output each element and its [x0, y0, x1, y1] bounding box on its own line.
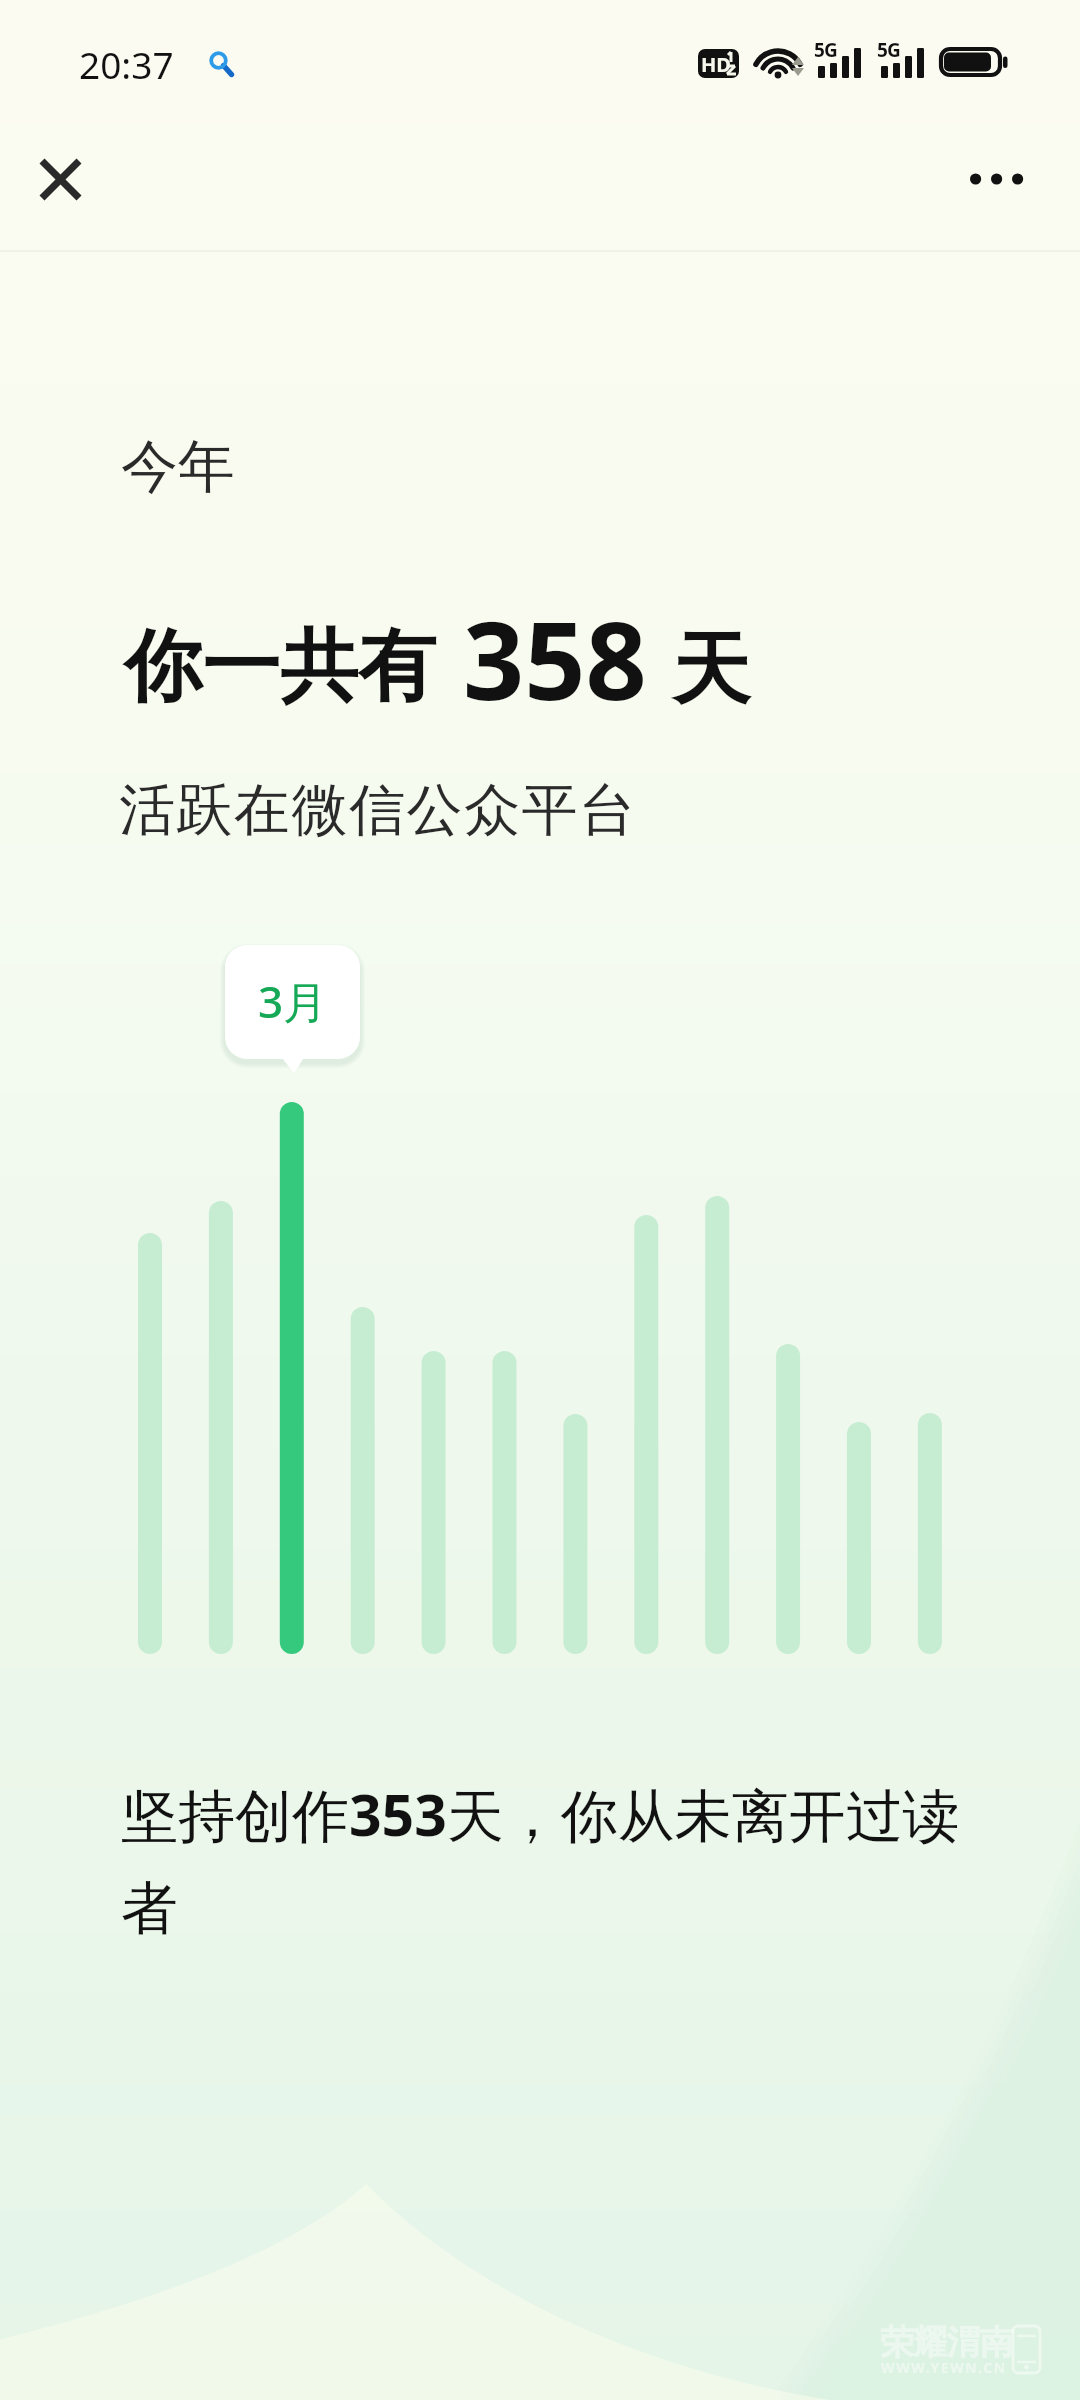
button[interactable]: Close — [18, 137, 102, 221]
staticText: 坚持创作353天，你从未离开过读 者 — [121, 1775, 960, 1945]
staticText: 活跃在微信公众平台 — [119, 775, 637, 846]
staticText: 5G — [814, 37, 838, 63]
staticText: WWW.YEWN.CN — [881, 2358, 1007, 2377]
staticText: 358 — [463, 586, 647, 732]
staticText: 你一共有 — [124, 618, 436, 716]
staticText: 天 — [672, 621, 750, 719]
staticText: 今年 — [121, 431, 235, 503]
staticText: 20:37 — [79, 39, 174, 89]
staticText: 3月 — [258, 971, 328, 1031]
staticText: HD — [701, 51, 731, 78]
staticText: 5G — [877, 37, 901, 63]
button[interactable]: More options — [941, 137, 1051, 221]
staticText: 荣耀渭南 — [881, 2321, 1013, 2364]
